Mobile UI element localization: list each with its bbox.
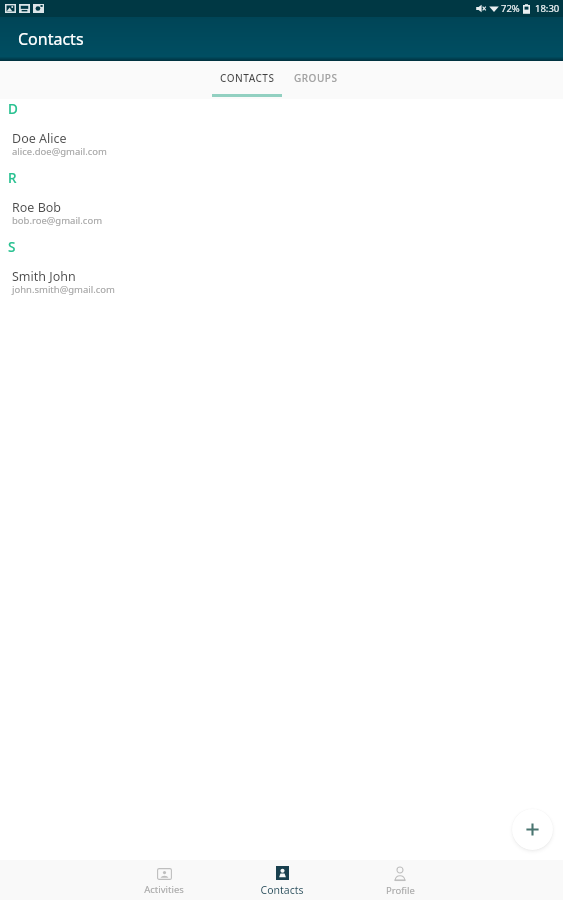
staticText: john.smith@gmail.com [12,283,115,296]
button[interactable]: Contacts [223,860,341,900]
button[interactable]: Profile [341,860,459,900]
button[interactable]: Roe Bob [0,190,563,235]
staticText: Smith John [12,268,76,285]
button[interactable]: Add contact [512,809,553,850]
staticText: GROUPS [294,71,338,85]
button[interactable]: Smith John [0,259,563,304]
button[interactable]: Doe Alice [0,121,563,166]
button[interactable]: Activities [105,860,223,900]
staticText: CONTACTS [220,71,275,85]
staticText: 72% [501,2,520,15]
staticText: Contacts [18,28,84,50]
staticText: bob.roe@gmail.com [12,214,103,227]
staticText: Contacts [260,883,304,897]
staticText: Activities [144,883,184,896]
staticText: Roe Bob [12,199,62,216]
staticText: Profile [386,884,415,897]
staticText: 18:30 [535,2,560,15]
staticText: Doe Alice [12,130,67,147]
staticText: alice.doe@gmail.com [12,145,107,158]
button[interactable]: CONTACTS [212,61,282,94]
staticText: S [8,238,16,256]
staticText: D [8,100,18,118]
staticText: R [8,169,17,187]
button[interactable]: GROUPS [282,61,350,94]
